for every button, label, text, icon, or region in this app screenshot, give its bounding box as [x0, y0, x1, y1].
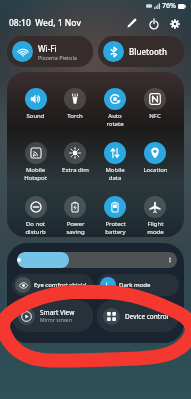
staticText: Do not disturb: [25, 220, 46, 236]
button[interactable]: Do not disturb: [16, 196, 55, 236]
button[interactable]: Protect battery: [95, 196, 135, 236]
button[interactable]: Wi-Fi: [7, 36, 93, 67]
staticText: 76%: [162, 1, 176, 11]
button[interactable]: Location: [135, 142, 175, 174]
button[interactable]: Sound: [16, 88, 55, 120]
staticText: Auto rotate: [106, 112, 124, 128]
button[interactable]: Torch: [55, 88, 95, 120]
staticText: Sound: [26, 112, 45, 120]
button[interactable]: Dark mode: [97, 274, 179, 296]
staticText: Device control: [125, 312, 169, 321]
button[interactable]: Settings: [164, 13, 185, 34]
staticText: Location: [143, 166, 168, 174]
button[interactable]: Auto rotate: [95, 88, 135, 128]
staticText: Wi-Fi: [38, 43, 57, 54]
button[interactable]: Power saving: [55, 196, 95, 236]
button[interactable]: Bluetooth: [98, 36, 184, 67]
button[interactable]: Eye comfort shield: [12, 274, 93, 296]
button[interactable]: Extra dim: [55, 142, 95, 174]
staticText: Bluetooth: [129, 46, 167, 57]
staticText: Protect battery: [105, 220, 126, 236]
staticText: NFC: [149, 112, 161, 120]
button[interactable]: Brightness: [17, 252, 177, 268]
button[interactable]: Mobile Hotspot: [16, 142, 55, 182]
staticText: Torch: [67, 112, 83, 120]
staticText: Mobile data: [105, 166, 125, 182]
button[interactable]: Flight mode: [135, 196, 175, 236]
button[interactable]: Device control: [97, 300, 179, 332]
staticText: Dark mode: [119, 281, 151, 289]
staticText: Extra dim: [62, 166, 89, 174]
button[interactable]: Mobile data: [95, 142, 135, 182]
staticText: Pizzeria Pietola: [38, 54, 77, 61]
staticText: Power saving: [66, 220, 85, 236]
staticText: Mobile Hotspot: [24, 166, 47, 182]
button[interactable]: Edit: [121, 12, 143, 34]
staticText: Smart View: [40, 308, 75, 317]
staticText: Eye comfort shield: [34, 281, 87, 289]
staticText: Flight mode: [147, 220, 164, 236]
staticText: 08:10 Wed, 1 Nov: [9, 17, 81, 29]
button[interactable]: NFC: [135, 88, 175, 120]
staticText: Mirror screen: [40, 317, 72, 324]
button[interactable]: Power: [143, 13, 164, 34]
button[interactable]: Smart View: [12, 300, 93, 332]
